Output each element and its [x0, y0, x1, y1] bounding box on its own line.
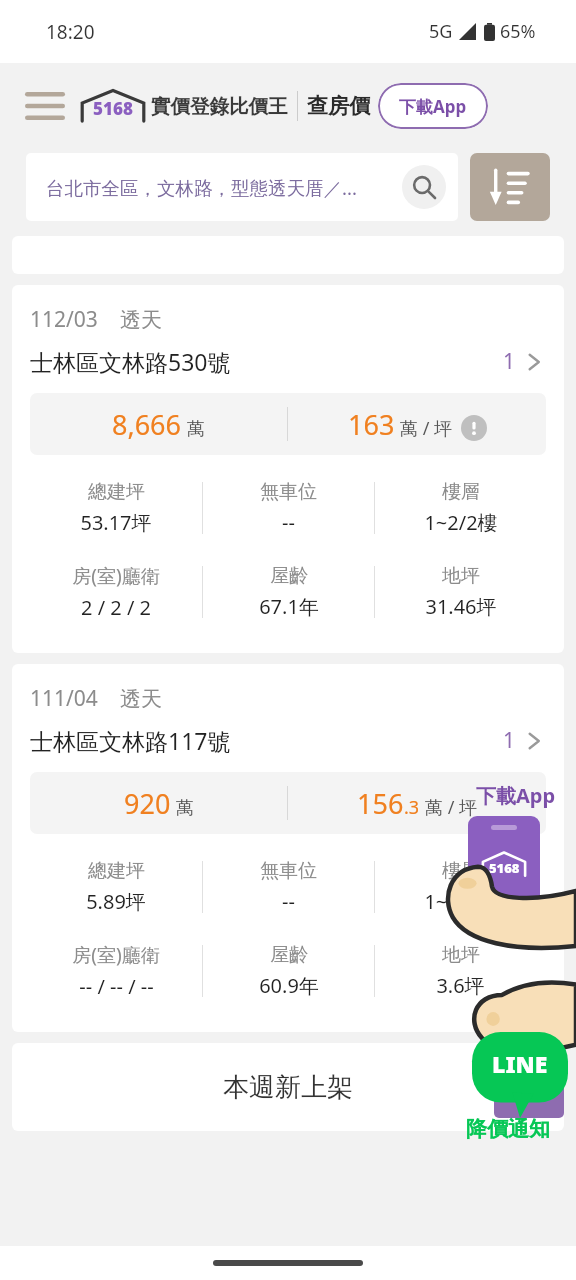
staticText: 萬 / 坪 — [425, 795, 478, 820]
button[interactable]: 查房價 — [307, 93, 370, 119]
staticText: 5168 — [93, 97, 133, 120]
button[interactable]: Sort — [470, 153, 550, 221]
staticText: 地坪 — [442, 943, 480, 967]
staticText: 1 — [503, 726, 516, 755]
staticText: 60.9年 — [259, 972, 319, 999]
staticText: 53.17坪 — [80, 509, 152, 536]
staticText: 總建坪 — [88, 480, 145, 504]
staticText: 5168 — [489, 859, 520, 877]
staticText: 67.1年 — [259, 593, 319, 620]
staticText: -- — [282, 888, 295, 915]
staticText: 3.6坪 — [436, 972, 485, 999]
staticText: 8,666 — [112, 406, 182, 443]
staticText: -- / -- / -- — [79, 973, 154, 1000]
staticText: 112/03 — [30, 305, 98, 334]
staticText: 31.46坪 — [425, 593, 497, 620]
staticText: 士林區文林路530號 — [30, 346, 503, 377]
staticText: 920 — [124, 785, 171, 822]
staticText: 萬 — [187, 418, 205, 441]
button[interactable]: Menu — [22, 83, 68, 129]
staticText: 房(室)廳衛 — [72, 563, 160, 589]
button[interactable]: Download app and LINE price alert — [436, 780, 576, 1170]
button[interactable]: 本週新上架 — [223, 1071, 353, 1104]
staticText: 1~2/2樓 — [424, 509, 498, 536]
staticText: 5.89坪 — [86, 888, 146, 915]
staticText: 下載App — [399, 95, 467, 118]
staticText: 156 — [357, 785, 404, 822]
staticText: 18:20 — [46, 19, 95, 45]
button[interactable]: 下載App — [378, 83, 488, 129]
staticText: 2 / 2 / 2 — [81, 594, 151, 621]
button[interactable]: Scroll to top — [494, 1056, 564, 1118]
staticText: 樓層 — [442, 480, 480, 504]
staticText: 無車位 — [260, 480, 317, 504]
button[interactable]: 台北市全區，文林路，型態透天厝／... — [26, 153, 458, 221]
staticText: 透天 — [120, 686, 162, 712]
staticText: 下載App — [476, 782, 556, 809]
staticText: 房(室)廳衛 — [72, 942, 160, 968]
staticText: 總建坪 — [88, 859, 145, 883]
staticText: 無車位 — [260, 859, 317, 883]
staticText: LINE — [492, 1048, 548, 1079]
staticText: 屋齡 — [270, 564, 308, 588]
staticText: 163 — [348, 406, 395, 443]
staticText: 65% — [500, 19, 536, 44]
button[interactable]: 5168 — [78, 88, 288, 124]
staticText: 萬 / 坪 — [400, 416, 453, 441]
staticText: 地坪 — [442, 564, 480, 588]
button[interactable]: 112/03 — [12, 285, 564, 653]
button[interactable]: Info — [461, 415, 487, 441]
staticText: 111/04 — [30, 684, 98, 713]
staticText: 台北市全區，文林路，型態透天厝／... — [46, 175, 396, 200]
staticText: 5G — [429, 19, 453, 44]
staticText: 透天 — [120, 307, 162, 333]
button[interactable]: 111/04 — [12, 664, 564, 1032]
staticText: 實價登錄比價王 — [151, 94, 288, 119]
staticText: 降價通知 — [466, 1116, 550, 1142]
staticText: 屋齡 — [270, 943, 308, 967]
staticText: .3 — [404, 795, 420, 820]
staticText: -- — [282, 509, 295, 536]
staticText: 樓層 — [442, 859, 480, 883]
staticText: 士林區文林路117號 — [30, 725, 503, 756]
staticText: 1 — [503, 347, 516, 376]
staticText: 萬 — [176, 797, 194, 820]
staticText: 1~2/2樓 — [424, 888, 498, 915]
